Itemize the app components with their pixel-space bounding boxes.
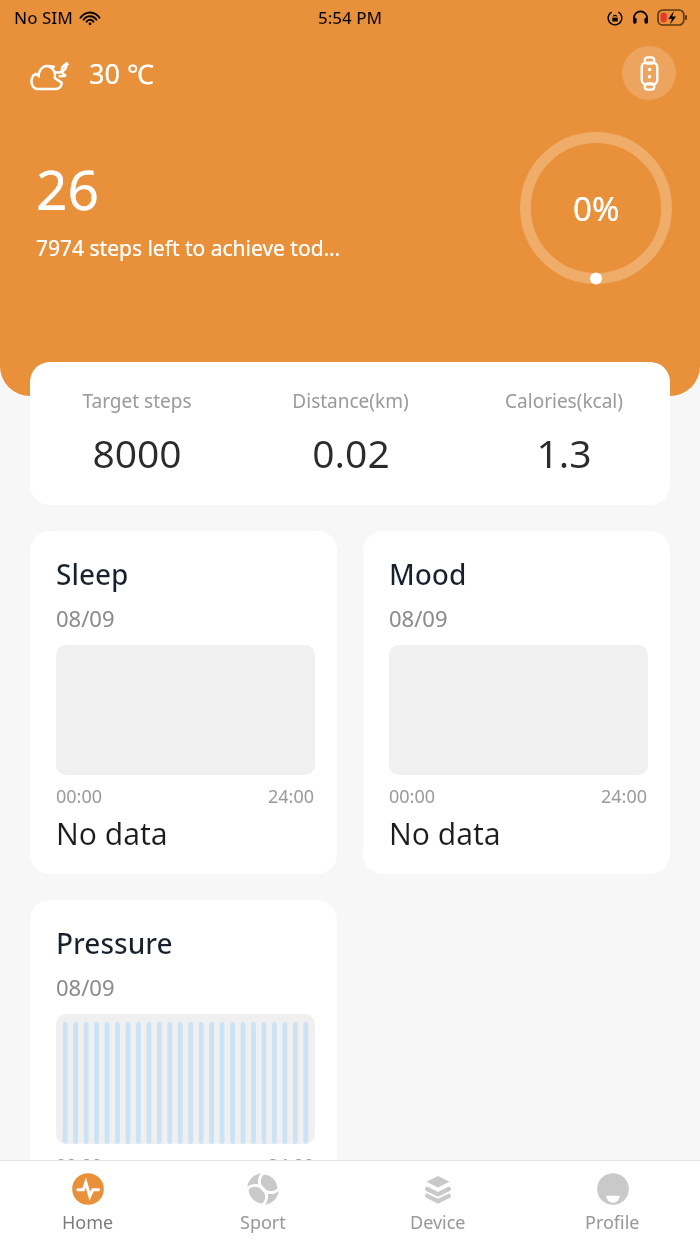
staticText: 24:00 <box>268 784 315 809</box>
staticText: 00:00 <box>389 784 436 809</box>
button[interactable]: Target steps <box>30 362 670 505</box>
staticText: Distance(km) <box>292 388 409 414</box>
button[interactable]: Profile <box>525 1161 700 1244</box>
staticText: 08/09 <box>56 603 115 633</box>
staticText: Home <box>62 1210 114 1235</box>
staticText: 00:00 <box>56 784 103 809</box>
button[interactable]: Device <box>350 1161 525 1244</box>
staticText: 26 <box>36 151 99 226</box>
staticText: 30 ℃ <box>89 55 154 92</box>
staticText: 08/09 <box>389 603 448 633</box>
staticText: 7974 steps left to achieve tod… <box>36 234 341 263</box>
button[interactable]: Home <box>0 1161 175 1244</box>
staticText: 1.3 <box>536 426 592 479</box>
button[interactable]: Pressure <box>30 900 337 1243</box>
staticText: Profile <box>585 1210 640 1235</box>
staticText: 00:00 <box>56 1153 103 1178</box>
staticText: Target steps <box>82 388 192 414</box>
staticText: Pressure <box>56 924 173 962</box>
staticText: 0% <box>573 186 620 231</box>
button[interactable]: Sleep <box>30 531 337 874</box>
staticText: 24:00 <box>601 784 648 809</box>
staticText: 24:00 <box>268 1153 315 1178</box>
staticText: Device <box>410 1210 466 1235</box>
staticText: 08/09 <box>56 972 115 1002</box>
button[interactable]: Mood <box>363 531 670 874</box>
staticText: Sleep <box>56 555 129 593</box>
button[interactable]: Sport <box>175 1161 350 1244</box>
staticText: Sport <box>240 1210 286 1235</box>
staticText: No data <box>56 813 168 854</box>
staticText: No SIM <box>14 6 73 29</box>
staticText: 8000 <box>92 426 182 479</box>
staticText: No data <box>389 813 501 854</box>
staticText: Calories(kcal) <box>505 388 623 414</box>
staticText: 0.02 <box>312 426 390 479</box>
staticText: Mood <box>389 555 467 593</box>
staticText: No data <box>56 1182 168 1223</box>
staticText: 5:54 PM <box>318 6 383 29</box>
button[interactable]: My device <box>622 46 676 100</box>
